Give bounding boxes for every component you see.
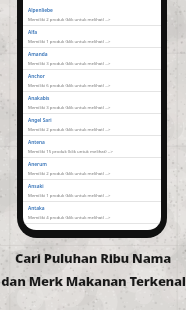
staticText: Cari Puluhan Ribu Nama xyxy=(15,249,171,267)
staticText: Alfa xyxy=(28,29,38,36)
staticText: Amanda xyxy=(28,51,48,58)
staticText: Memiliki 3 produk (klik untuk melihat) -… xyxy=(28,104,111,110)
staticText: Ansaki xyxy=(28,183,44,190)
staticText: dan Merk Makanan Terkenal xyxy=(1,272,186,290)
button[interactable]: Angel Sari xyxy=(23,114,161,136)
button[interactable]: Amanda xyxy=(23,48,161,70)
button[interactable]: Ansaki xyxy=(23,180,161,202)
staticText: Memiliki 2 produk (klik untuk melihat) -… xyxy=(28,126,111,132)
button[interactable]: Anerum xyxy=(23,158,161,180)
staticText: Antaka xyxy=(28,205,45,212)
staticText: Anchor xyxy=(28,73,45,80)
button[interactable]: Anchor xyxy=(23,70,161,92)
staticText: Memiliki 6 produk (klik untuk melihat) -… xyxy=(28,82,111,88)
staticText: Memiliki 1 produk (klik untuk melihat) -… xyxy=(28,38,111,44)
staticText: Memiliki 1 produk (klik untuk melihat) -… xyxy=(28,192,111,198)
staticText: Antena xyxy=(28,139,45,146)
button[interactable]: Alpenliebe xyxy=(23,4,161,26)
button[interactable]: Antaka xyxy=(23,202,161,224)
button[interactable]: Alfa xyxy=(23,26,161,48)
staticText: Memiliki 2 produk (klik untuk melihat) -… xyxy=(28,16,111,22)
staticText: Memiliki 2 produk (klik untuk melihat) -… xyxy=(28,170,111,176)
staticText: Anerum xyxy=(28,161,47,168)
button[interactable]: Antena xyxy=(23,136,161,158)
button[interactable]: Anakabis xyxy=(23,92,161,114)
staticText: Alpenliebe xyxy=(28,7,53,14)
staticText: Angel Sari xyxy=(28,117,52,124)
staticText: Memiliki 4 produk (klik untuk melihat) -… xyxy=(28,214,111,220)
staticText: Anakabis xyxy=(28,95,50,102)
staticText: Memiliki 15 produk (klik untuk melihat) … xyxy=(28,148,113,154)
staticText: Memiliki 3 produk (klik untuk melihat) -… xyxy=(28,60,111,66)
